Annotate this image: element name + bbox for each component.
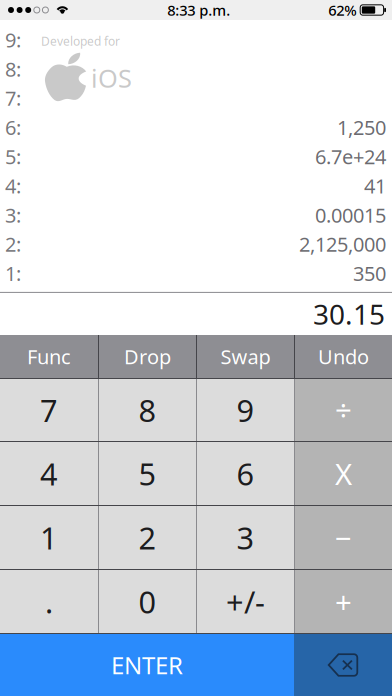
button[interactable]: + xyxy=(295,570,392,633)
button[interactable]: 5 xyxy=(99,442,196,505)
staticText: 8: xyxy=(5,56,21,82)
button[interactable]: − xyxy=(295,506,392,569)
button[interactable]: 9 xyxy=(197,379,294,441)
staticText: 6: xyxy=(5,114,21,141)
staticText: 9 xyxy=(236,390,254,430)
staticText: 62% xyxy=(328,0,356,20)
staticText: 1,250 xyxy=(337,114,386,141)
button[interactable]: Func xyxy=(0,335,98,378)
staticText: Developed for xyxy=(41,33,120,49)
staticText: 7 xyxy=(40,390,58,430)
staticText: 1 xyxy=(40,517,58,558)
button[interactable]: ÷ xyxy=(295,379,392,441)
staticText: 41 xyxy=(364,172,386,199)
button[interactable]: Drop xyxy=(99,335,196,378)
staticText: 5: xyxy=(5,143,21,170)
staticText: − xyxy=(335,518,352,557)
staticText: 3 xyxy=(236,517,254,558)
button[interactable]: 8 xyxy=(99,379,196,441)
button[interactable]: 1 xyxy=(0,506,98,569)
staticText: Swap xyxy=(220,343,270,370)
staticText: 0.00015 xyxy=(315,202,386,228)
staticText: 2,125,000 xyxy=(299,231,386,257)
staticText: ÷ xyxy=(335,390,352,429)
button[interactable]: Backspace xyxy=(294,634,392,696)
staticText: +/- xyxy=(226,581,265,622)
staticText: 6 xyxy=(236,453,254,494)
staticText: Undo xyxy=(318,343,369,370)
staticText: 2: xyxy=(5,231,21,257)
staticText: 5 xyxy=(138,453,156,494)
button[interactable]: +/- xyxy=(197,570,294,633)
staticText: iOS xyxy=(91,61,132,95)
staticText: Func xyxy=(27,343,71,370)
staticText: 3: xyxy=(5,202,21,228)
staticText: + xyxy=(335,582,352,621)
staticText: 30.15 xyxy=(313,295,385,332)
button[interactable]: ENTER xyxy=(0,634,294,696)
button[interactable]: 6 xyxy=(197,442,294,505)
staticText: 4: xyxy=(5,172,21,199)
staticText: 350 xyxy=(353,260,386,287)
button[interactable]: X xyxy=(295,442,392,505)
staticText: 0 xyxy=(138,581,156,622)
button[interactable]: 2 xyxy=(99,506,196,569)
button[interactable]: Undo xyxy=(295,335,392,378)
staticText: 1: xyxy=(5,260,21,287)
staticText: 8 xyxy=(138,390,156,430)
staticText: Drop xyxy=(124,343,171,370)
button[interactable]: . xyxy=(0,570,98,633)
staticText: 2 xyxy=(138,517,156,558)
staticText: 7: xyxy=(5,85,21,111)
button[interactable]: 4 xyxy=(0,442,98,505)
staticText: . xyxy=(45,581,53,622)
staticText: X xyxy=(335,454,352,493)
staticText: 8:33 p.m. xyxy=(167,0,230,20)
staticText: 9: xyxy=(5,26,21,53)
staticText: 6.7e+24 xyxy=(315,143,386,170)
button[interactable]: 3 xyxy=(197,506,294,569)
staticText: ENTER xyxy=(111,649,183,681)
button[interactable]: 7 xyxy=(0,379,98,441)
staticText: 4 xyxy=(40,453,58,494)
button[interactable]: 0 xyxy=(99,570,196,633)
button[interactable]: Swap xyxy=(197,335,294,378)
